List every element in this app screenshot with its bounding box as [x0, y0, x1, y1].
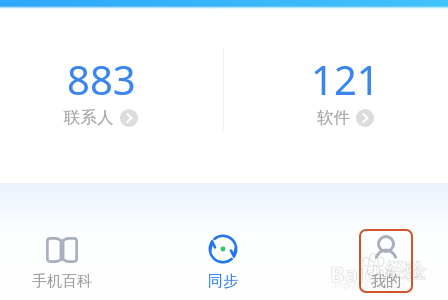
other: 同步 — [208, 234, 238, 264]
staticText: 联系人 — [64, 107, 114, 128]
button[interactable]: 我的 — [359, 229, 413, 293]
button[interactable]: 手机百科 — [22, 230, 102, 294]
other: 我的 — [373, 235, 399, 259]
button[interactable]: 121 — [285, 52, 405, 128]
staticText: 我的 — [371, 272, 401, 291]
button[interactable]: 883 — [41, 52, 161, 128]
staticText: 手机百科 — [32, 272, 92, 291]
staticText: 软件 — [317, 107, 350, 128]
staticText: 经验 — [385, 259, 425, 284]
other: 手机百科 — [46, 237, 78, 263]
staticText: 121 — [311, 52, 380, 106]
staticText: 883 — [67, 52, 136, 106]
button[interactable]: 同步 — [183, 230, 263, 294]
staticText: 同步 — [208, 272, 238, 291]
staticText: Baidu — [330, 258, 393, 288]
staticText: jingyan.baidu.com — [332, 279, 406, 291]
